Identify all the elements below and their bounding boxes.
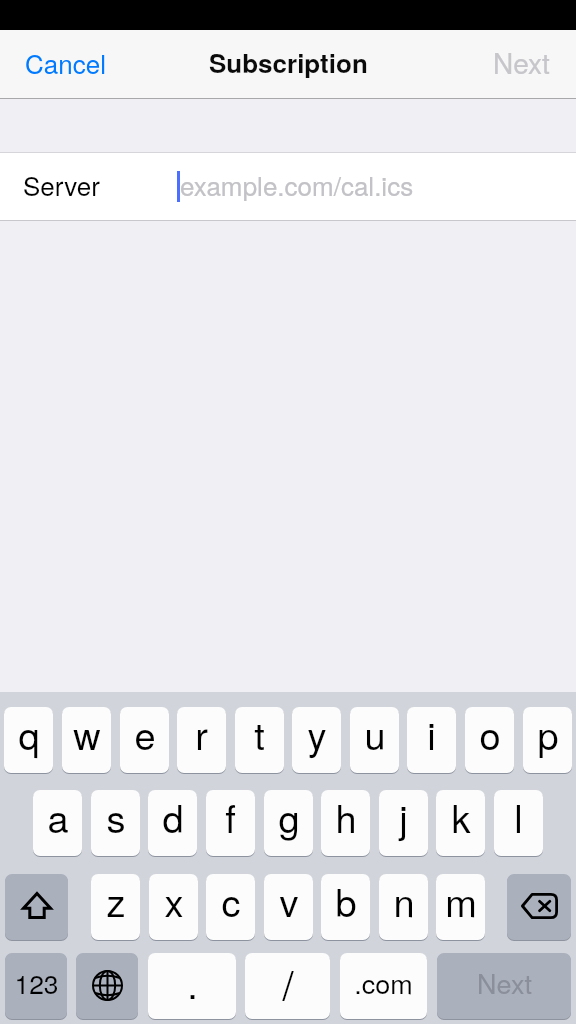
button[interactable]: Backspace [507,874,571,940]
button[interactable]: v [264,874,313,940]
staticText: g [278,790,300,843]
staticText: Cancel [25,44,106,81]
staticText: z [106,874,126,927]
staticText: Subscription [209,44,368,81]
button[interactable]: l [494,790,543,856]
staticText: s [106,790,126,843]
button[interactable]: 123 [5,953,67,1019]
button[interactable]: .com [340,953,427,1019]
button[interactable]: Cancel [0,30,122,98]
button[interactable]: q [4,707,53,773]
button[interactable]: b [321,874,370,940]
button[interactable]: e [120,707,169,773]
staticText: i [427,707,436,760]
button[interactable]: j [379,790,428,856]
staticText: / [282,954,294,1011]
button[interactable]: g [264,790,313,856]
staticText: k [451,790,471,843]
button[interactable]: x [149,874,198,940]
button[interactable]: Next [437,953,571,1019]
staticText: Server [23,166,100,203]
staticText: v [279,874,299,927]
button[interactable]: n [379,874,428,940]
staticText: c [221,874,241,927]
button[interactable]: d [148,790,197,856]
staticText: Next [477,963,532,1002]
button[interactable]: f [206,790,255,856]
staticText: t [254,707,265,760]
button[interactable]: Change keyboard [76,953,138,1019]
button[interactable]: h [321,790,370,856]
staticText: . [187,955,198,1009]
staticText: h [335,790,357,843]
button[interactable]: t [235,707,284,773]
staticText: x [164,874,184,927]
staticText: Next [493,42,550,82]
staticText: p [537,707,559,760]
button[interactable]: . [148,953,236,1019]
staticText: b [335,874,357,927]
staticText: j [399,790,408,843]
staticText: w [73,707,101,760]
button[interactable]: r [177,707,226,773]
staticText: l [514,790,523,843]
staticText: e [134,707,156,760]
button[interactable]: Shift [5,874,68,940]
button[interactable]: a [33,790,82,856]
button[interactable]: k [436,790,485,856]
staticText: example.com/cal.ics [180,166,414,203]
button[interactable]: c [206,874,255,940]
staticText: y [307,707,327,760]
staticText: .com [354,963,413,1002]
button[interactable]: m [436,874,485,940]
button[interactable]: y [292,707,341,773]
staticText: r [195,707,208,760]
button[interactable]: / [245,953,330,1019]
button[interactable]: o [465,707,514,773]
button[interactable]: w [62,707,111,773]
staticText: d [162,790,184,843]
staticText: n [393,874,415,927]
staticText: o [479,707,501,760]
staticText: m [445,874,477,927]
staticText: 123 [14,964,59,1002]
button[interactable]: z [91,874,140,940]
staticText: q [18,707,40,760]
staticText: f [225,790,236,843]
button[interactable]: u [350,707,399,773]
button[interactable]: p [523,707,572,773]
button[interactable]: Next [477,30,576,98]
button[interactable]: s [91,790,140,856]
button[interactable]: Server [0,153,576,220]
staticText: a [47,790,69,843]
button[interactable]: i [407,707,456,773]
staticText: u [364,707,386,760]
